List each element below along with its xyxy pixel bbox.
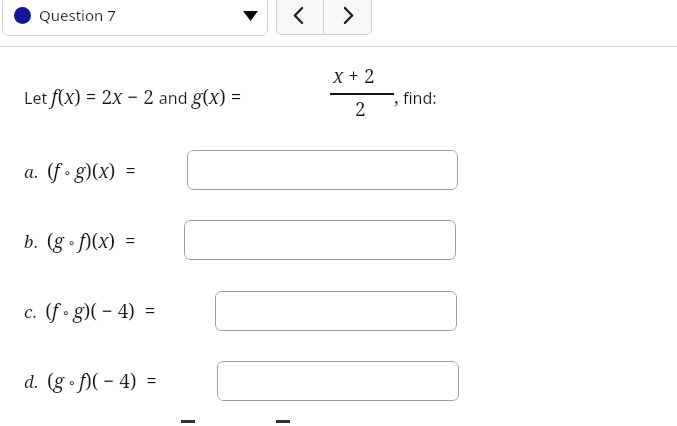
button[interactable]: Answer d [217,361,459,401]
button[interactable] [2,0,268,36]
button[interactable]: Answer a [187,150,458,190]
button[interactable]: Previous question [276,0,323,35]
staticText: , find: [394,84,437,110]
staticText: 2 [355,96,366,122]
button[interactable]: Answer b [184,220,456,260]
staticText: x + 2 [333,63,375,89]
staticText: Let f(x) = 2x − 2 and g(x) = [24,84,242,110]
button[interactable]: Next question [325,0,372,35]
staticText: a. (f ∘ g)(x) = [24,158,136,184]
staticText: Question 7 [39,5,116,25]
button[interactable]: Answer c [215,291,457,331]
staticText: c. (f ∘ g)( − 4) = [24,298,156,324]
staticText: d. (g ∘ f)( − 4) = [24,368,157,394]
other: Open question list [243,11,258,21]
staticText: b. (g ∘ f)(x) = [24,228,136,254]
